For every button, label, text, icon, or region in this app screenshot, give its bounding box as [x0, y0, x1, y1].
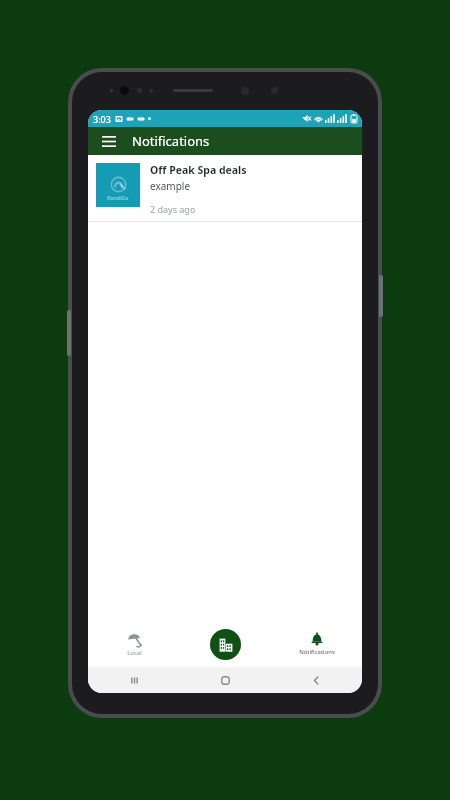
- staticText: 2 days ago: [150, 203, 196, 215]
- staticText: 3:03: [93, 113, 111, 125]
- staticText: Off Peak Spa deals: [150, 163, 247, 177]
- button[interactable]: Home: [180, 667, 271, 693]
- button[interactable]: HandiGo: [88, 155, 362, 222]
- button[interactable]: Open navigation menu: [98, 130, 120, 152]
- staticText: example: [150, 179, 191, 193]
- staticText: Notifications: [299, 648, 335, 656]
- button[interactable]: Businesses: [180, 621, 271, 667]
- button[interactable]: Recent apps: [88, 667, 180, 693]
- staticText: HandiGo: [107, 195, 129, 202]
- staticText: Local: [127, 649, 142, 657]
- staticText: Notifications: [132, 132, 210, 150]
- button[interactable]: Local: [88, 621, 180, 667]
- button[interactable]: Notifications: [271, 621, 362, 667]
- button[interactable]: Back: [271, 667, 362, 693]
